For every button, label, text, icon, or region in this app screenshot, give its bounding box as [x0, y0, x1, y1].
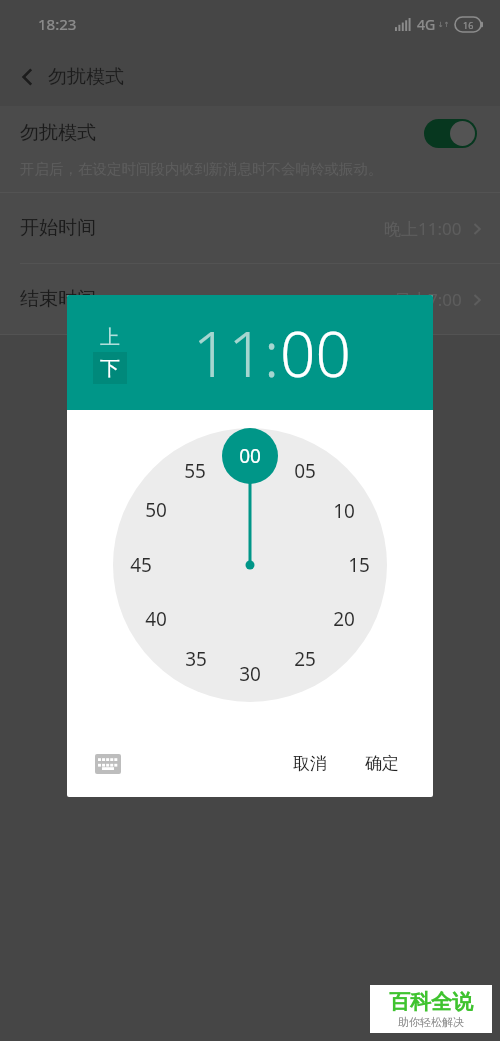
button[interactable]: 10: [324, 491, 364, 531]
staticText: 取消: [293, 753, 327, 774]
button[interactable]: Back: [8, 57, 48, 97]
staticText: 25: [294, 646, 316, 672]
staticText: 18:23: [38, 14, 77, 34]
staticText: 15: [348, 552, 370, 578]
button[interactable]: 45: [121, 545, 161, 585]
staticText: 40: [145, 606, 167, 632]
staticText: 11: [193, 311, 264, 395]
staticText: 勿扰模式: [48, 65, 124, 89]
staticText: 00: [239, 443, 261, 469]
button[interactable]: 确定: [351, 745, 413, 782]
button[interactable]: 11: [193, 311, 264, 395]
button[interactable]: 55: [175, 451, 215, 491]
button[interactable]: 30: [230, 654, 270, 694]
button[interactable]: 50: [136, 490, 176, 530]
button[interactable]: 结束时间: [0, 264, 500, 334]
staticText: 晚上11:00: [384, 217, 462, 240]
staticText: ↓↑: [438, 21, 450, 29]
button[interactable]: 25: [285, 639, 325, 679]
staticText: 早上7:00: [394, 288, 462, 311]
button[interactable]: 上: [93, 322, 127, 352]
staticText: 百科全说: [389, 989, 473, 1015]
button[interactable]: 40: [136, 599, 176, 639]
staticText: 00: [280, 311, 351, 395]
staticText: 勿扰模式: [20, 121, 96, 145]
staticText: 开始时间: [20, 216, 96, 240]
staticText: 下: [100, 356, 120, 381]
staticText: 开启后，在设定时间段内收到新消息时不会响铃或振动。: [20, 160, 383, 178]
staticText: 45: [130, 552, 152, 578]
staticText: 16: [463, 19, 474, 31]
staticText: 助你轻松解决: [398, 1015, 464, 1029]
staticText: 50: [145, 497, 167, 523]
staticText: 结束时间: [20, 287, 96, 311]
staticText: 30: [239, 661, 261, 687]
button[interactable]: 05: [285, 451, 325, 491]
staticText: 55: [184, 458, 206, 484]
button[interactable]: 35: [176, 639, 216, 679]
staticText: 10: [333, 498, 355, 524]
staticText: 05: [294, 458, 316, 484]
staticText: 确定: [365, 753, 399, 774]
staticText: 上: [100, 325, 120, 350]
button[interactable]: Keyboard input: [91, 747, 125, 781]
staticText: 35: [185, 646, 207, 672]
button[interactable]: 00: [280, 311, 351, 395]
button[interactable]: 15: [339, 545, 379, 585]
button[interactable]: 取消: [279, 745, 341, 782]
staticText: 4G: [417, 15, 436, 34]
staticText: 20: [333, 606, 355, 632]
button[interactable]: 开始时间: [0, 193, 500, 263]
button[interactable]: 00: [230, 436, 270, 476]
button[interactable]: 下: [93, 352, 127, 384]
button[interactable]: 20: [324, 599, 364, 639]
button[interactable]: 勿扰模式: [0, 106, 500, 160]
staticText: :: [264, 311, 280, 395]
